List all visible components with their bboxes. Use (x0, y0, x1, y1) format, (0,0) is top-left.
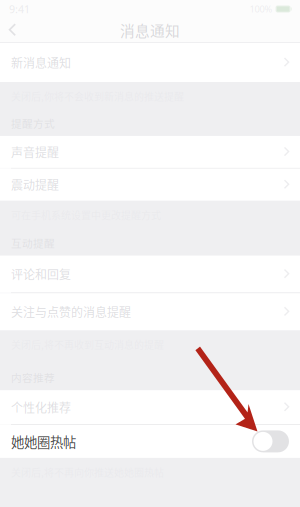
button[interactable]: 个性化推荐 (0, 390, 300, 424)
staticText: 消息通知 (120, 19, 180, 41)
staticText: 9:41 (9, 2, 30, 16)
button[interactable]: 新消息通知 (0, 43, 300, 82)
staticText: 关注与点赞的消息提醒 (11, 303, 131, 320)
button[interactable]: 她她圈热帖 (0, 425, 300, 458)
staticText: 个性化推荐 (11, 398, 71, 416)
staticText: 声音提醒 (11, 143, 59, 161)
staticText: 内容推荐 (11, 370, 55, 385)
button[interactable]: Back (0, 18, 34, 42)
button[interactable]: 声音提醒 (0, 136, 300, 168)
staticText: 新消息通知 (11, 54, 71, 71)
button[interactable]: 震动提醒 (0, 169, 300, 201)
button[interactable]: 评论和回复 (0, 256, 300, 293)
staticText: 互动提醒 (11, 235, 55, 250)
staticText: 提醒方式 (11, 115, 55, 131)
button[interactable]: 关注与点赞的消息提醒 (0, 293, 300, 330)
staticText: 震动提醒 (11, 176, 59, 193)
staticText: 她她圈热帖 (11, 432, 76, 451)
staticText: 评论和回复 (11, 265, 71, 283)
staticText: 100% (250, 3, 273, 15)
